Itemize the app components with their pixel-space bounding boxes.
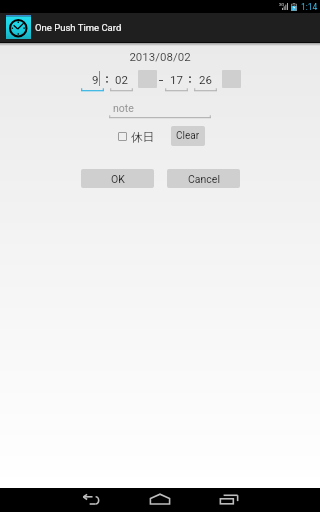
staticText: 26 bbox=[194, 73, 217, 86]
button[interactable]: Clear bbox=[171, 126, 205, 146]
staticText: One Push Time Card bbox=[35, 22, 122, 33]
button[interactable]: 9 bbox=[81, 70, 104, 88]
button[interactable]: Back bbox=[76, 487, 104, 511]
staticText: 2013/08/02 bbox=[0, 50, 320, 63]
staticText: Clear bbox=[176, 130, 200, 142]
staticText: 1:14 bbox=[301, 2, 318, 12]
staticText: 休日 bbox=[131, 130, 154, 144]
staticText: 17 bbox=[165, 73, 188, 86]
button[interactable]: 02 bbox=[110, 70, 133, 88]
staticText: note bbox=[113, 102, 134, 114]
button[interactable]: Recent apps bbox=[215, 487, 243, 511]
staticText: 02 bbox=[110, 73, 133, 86]
staticText: 9 bbox=[92, 73, 99, 86]
staticText: Cancel bbox=[188, 173, 220, 185]
button[interactable]: 17 bbox=[165, 70, 188, 88]
button[interactable]: Cancel bbox=[167, 169, 240, 188]
button[interactable] bbox=[118, 132, 127, 141]
staticText: OK bbox=[111, 173, 125, 185]
button[interactable]: Home bbox=[146, 487, 174, 511]
staticText: 3G bbox=[279, 2, 285, 7]
button[interactable]: 26 bbox=[194, 70, 217, 88]
button[interactable]: OK bbox=[81, 169, 154, 188]
